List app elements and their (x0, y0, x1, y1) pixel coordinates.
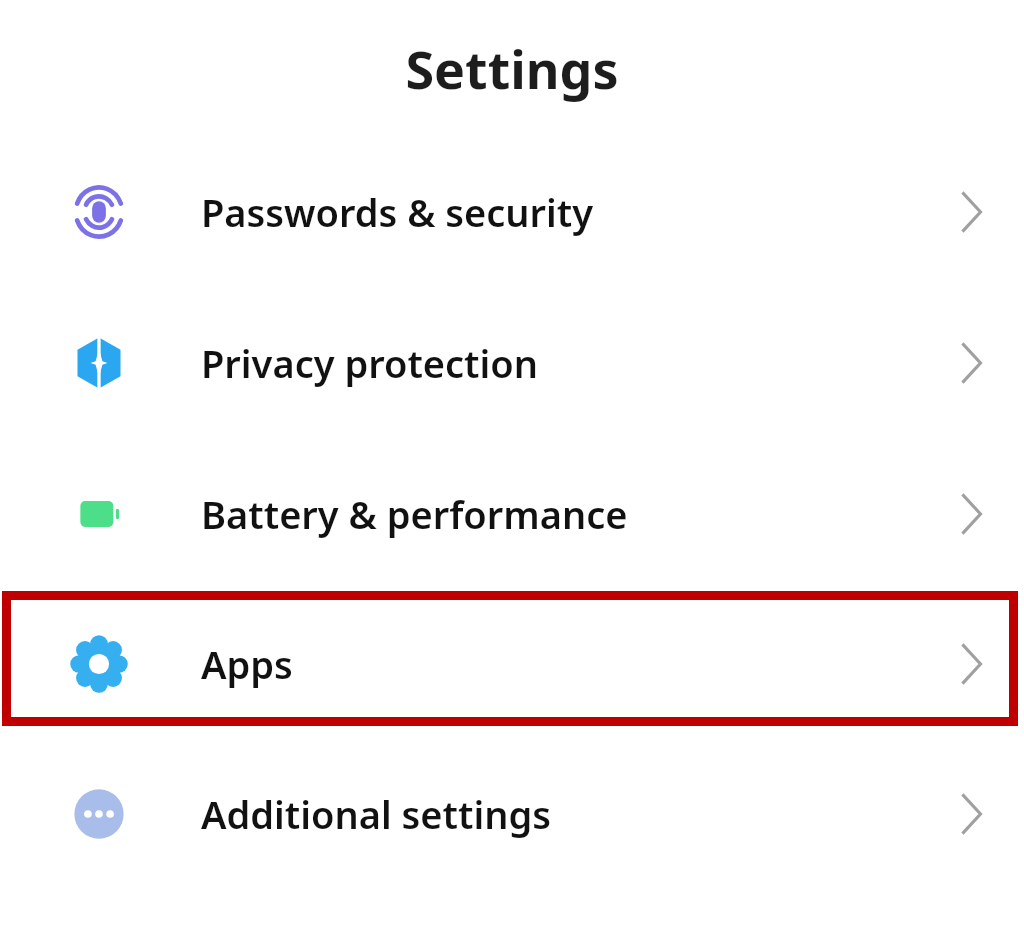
button[interactable]: Additional settings (0, 738, 1024, 889)
staticText: Apps (201, 638, 293, 690)
other: Open Battery & performance (920, 438, 1024, 589)
other: Open Privacy protection (920, 287, 1024, 438)
button[interactable]: Passwords & security (0, 136, 1024, 287)
staticText: Battery & performance (201, 488, 628, 540)
button[interactable]: Apps (0, 589, 1024, 738)
button[interactable]: Privacy protection (0, 287, 1024, 438)
staticText: Privacy protection (201, 337, 538, 389)
staticText: Additional settings (201, 788, 551, 840)
button[interactable]: Battery & performance (0, 438, 1024, 589)
staticText: Passwords & security (201, 186, 594, 238)
staticText: Settings (405, 33, 619, 104)
other: Open Additional settings (920, 738, 1024, 889)
other: Open Apps (920, 589, 1024, 738)
other: Open Passwords & security (920, 136, 1024, 287)
